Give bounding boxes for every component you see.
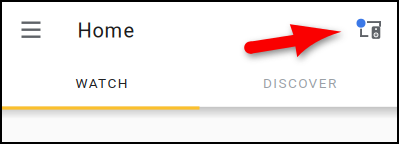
staticText: DISCOVER bbox=[263, 75, 336, 91]
staticText: WATCH bbox=[75, 75, 128, 91]
button[interactable]: Open navigation menu bbox=[7, 6, 55, 54]
button[interactable]: Cast to speaker group bbox=[346, 7, 390, 51]
button[interactable]: DISCOVER bbox=[199, 62, 399, 107]
staticText: Home bbox=[77, 19, 134, 42]
button[interactable]: WATCH bbox=[0, 62, 199, 107]
